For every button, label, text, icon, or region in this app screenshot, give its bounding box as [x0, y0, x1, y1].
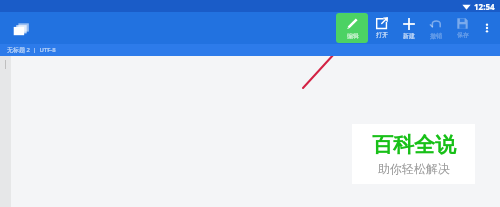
button[interactable]: 撤销	[422, 13, 449, 43]
button[interactable]: 打开	[368, 13, 395, 43]
button[interactable]: 新建	[395, 13, 422, 43]
staticText: 百科全说	[372, 132, 456, 158]
staticText: 撤销	[430, 32, 442, 40]
staticText: 编辑	[347, 32, 359, 40]
button[interactable]: 编辑	[336, 13, 368, 43]
staticText: 新建	[403, 32, 415, 40]
staticText: 打开	[376, 31, 388, 39]
staticText: 保存	[457, 31, 469, 39]
staticText: 无标题 2 | UTF-8	[7, 46, 56, 54]
button[interactable]: 保存	[449, 13, 476, 43]
staticText: 12:54	[474, 1, 495, 12]
staticText: 助你轻松解决	[378, 161, 450, 176]
button[interactable]: More options	[476, 13, 498, 43]
button[interactable]: Tabs	[8, 14, 36, 42]
